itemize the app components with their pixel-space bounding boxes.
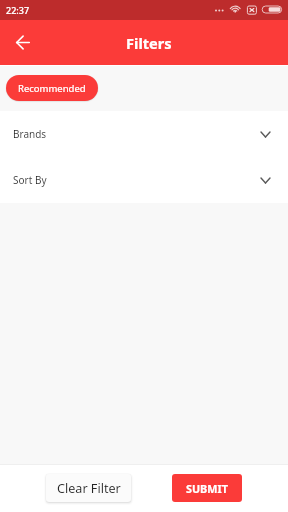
staticText: Clear Filter <box>57 480 121 497</box>
staticText: Recommended <box>18 82 86 95</box>
staticText: Filters <box>126 33 172 53</box>
staticText: SUBMIT <box>186 481 228 496</box>
button[interactable]: Clear Filter <box>46 474 131 502</box>
staticText: 22:37 <box>6 4 30 16</box>
button[interactable]: Recommended <box>6 75 98 101</box>
staticText: Brands <box>13 127 47 141</box>
button[interactable]: Sort By <box>0 157 288 203</box>
button[interactable]: Back <box>9 28 37 56</box>
button[interactable]: SUBMIT <box>172 474 242 502</box>
staticText: Sort By <box>13 173 47 187</box>
button[interactable]: Brands <box>0 111 288 157</box>
